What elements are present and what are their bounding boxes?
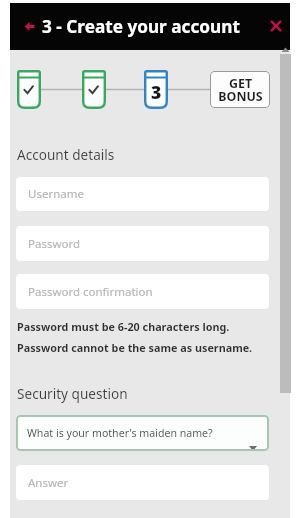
staticText: Username (28, 186, 84, 202)
button[interactable]: Username (16, 177, 269, 211)
staticText: Password confirmation (28, 284, 153, 300)
button[interactable]: Answer (16, 465, 269, 500)
staticText: 3 - Create your account (42, 15, 240, 38)
button[interactable]: Password (16, 226, 269, 261)
button[interactable]: Close (264, 14, 288, 38)
staticText: Answer (28, 475, 69, 491)
staticText: Security question (17, 384, 128, 403)
staticText: Account details (17, 145, 115, 164)
button[interactable]: What is your mother's maiden name? (16, 415, 269, 451)
button[interactable]: Back (16, 13, 44, 41)
button[interactable]: GET BONUS (210, 71, 270, 108)
staticText: What is your mother's maiden name? (27, 426, 213, 440)
staticText: Password must be 6-20 characters long. (17, 319, 230, 334)
button[interactable]: Password confirmation (16, 274, 269, 309)
staticText: 3 (151, 80, 162, 104)
button[interactable]: Step 3 (144, 70, 168, 109)
staticText: GET BONUS (218, 75, 263, 105)
button[interactable]: Completed step (82, 70, 106, 109)
button[interactable]: Completed step (17, 70, 41, 109)
staticText: Password (28, 236, 81, 252)
staticText: Password cannot be the same as username. (17, 340, 253, 355)
